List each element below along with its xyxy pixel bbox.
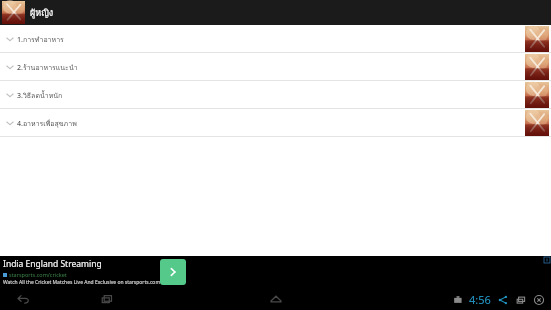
- staticText: 4:56: [469, 292, 491, 307]
- button[interactable]: Home: [269, 292, 283, 306]
- button[interactable]: Expand: [0, 53, 551, 81]
- staticText: 3.วิธีลดน้ำหนัก: [17, 90, 63, 101]
- staticText: 4.อาหารเพื่อสุขภาพ: [17, 118, 77, 129]
- staticText: India England Streaming: [3, 258, 102, 270]
- button[interactable]: Ad choices: [544, 257, 550, 263]
- button[interactable]: Expand: [0, 81, 551, 109]
- other: Expand: [5, 118, 15, 128]
- staticText: 2.ร้านอาหารแนะนำ: [17, 62, 78, 73]
- button[interactable]: Expand: [0, 25, 551, 53]
- staticText: ผู้หญิง: [30, 6, 54, 20]
- button[interactable]: India England Streaming: [0, 256, 551, 288]
- button[interactable]: Expand: [0, 109, 551, 137]
- other: Expand: [5, 90, 15, 100]
- staticText: Watch All the Cricket Matches Live And E…: [3, 279, 161, 286]
- staticText: 1.การทำอาหาร: [17, 34, 64, 45]
- button[interactable]: Recent apps: [100, 292, 114, 306]
- button[interactable]: Open ad: [160, 259, 186, 285]
- other: Expand: [5, 62, 15, 72]
- button[interactable]: Share: [497, 294, 509, 306]
- button[interactable]: Back: [16, 292, 30, 306]
- button[interactable]: Screenshot: [452, 294, 464, 306]
- button[interactable]: Cast screen: [515, 294, 527, 306]
- other: Expand: [5, 34, 15, 44]
- staticText: starsports.com/cricket: [9, 271, 67, 278]
- button[interactable]: Close: [533, 294, 545, 306]
